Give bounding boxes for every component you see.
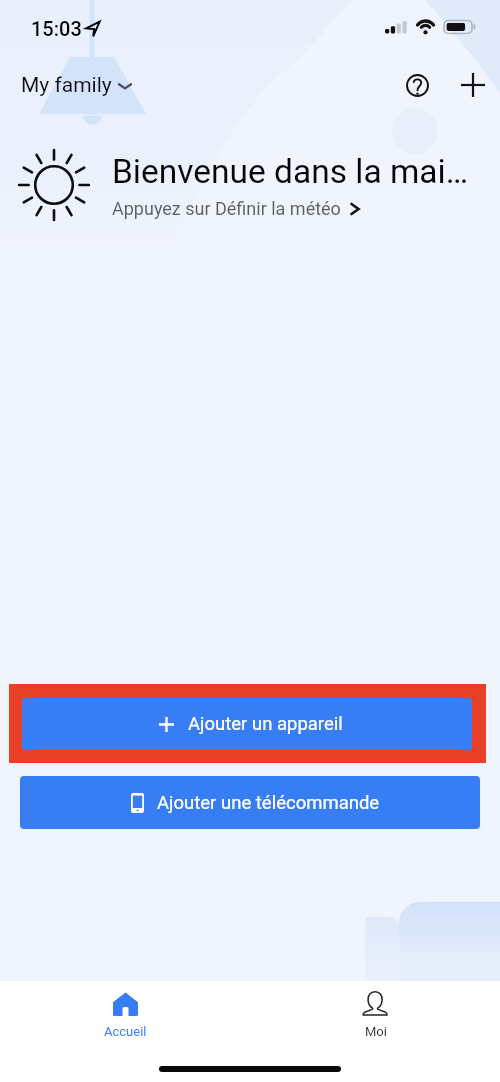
button[interactable]: My family	[13, 67, 140, 104]
staticText: My family	[21, 73, 112, 98]
button[interactable]: Ajouter un appareil	[22, 698, 472, 750]
button[interactable]: Moi	[250, 981, 500, 1049]
staticText: Ajouter un appareil	[188, 713, 343, 735]
staticText: Appuyez sur Définir la météo	[112, 198, 341, 219]
staticText: Accueil	[104, 1024, 147, 1039]
staticText: Ajouter une télécommande	[157, 792, 380, 814]
staticText: Moi	[365, 1024, 387, 1039]
button[interactable]: Accueil	[0, 981, 250, 1049]
button[interactable]: Add	[446, 58, 500, 112]
staticText: 15:03	[31, 17, 82, 40]
button[interactable]: Bienvenue dans la mai…	[0, 148, 500, 236]
button[interactable]: Ajouter une télécommande	[20, 776, 480, 829]
button[interactable]: Help	[394, 62, 440, 108]
staticText: Bienvenue dans la mai…	[112, 152, 469, 191]
